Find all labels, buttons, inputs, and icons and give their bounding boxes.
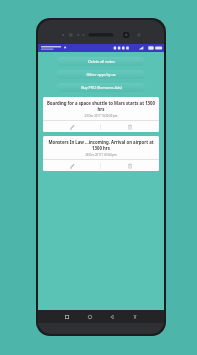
staticText: Buy PRO (Removes Ads) [81,85,122,90]
button[interactable]: Monsters In Law ...incoming. Arrival on … [43,136,159,171]
staticText: Delete all notes [88,59,115,64]
button[interactable]: Buy PRO (Removes Ads) [57,83,145,92]
button[interactable]: Other apps by us [57,70,145,79]
button[interactable]: Recent apps [62,312,72,322]
button[interactable]: Boarding for a space shuttle to Mars sta… [43,97,159,132]
staticText: 29 Dec 2017 10:30:00 pm [43,114,159,118]
button[interactable]: Edit note [43,121,100,132]
button[interactable]: Home [85,312,95,322]
button[interactable]: Edit note [43,160,100,171]
button[interactable]: Back [107,312,117,322]
staticText: Other apps by us [86,72,116,77]
staticText: Boarding for a space shuttle to Mars sta… [46,100,156,112]
button[interactable]: Delete note [101,121,159,132]
staticText: Monsters In Law ...incoming. Arrival on … [46,139,156,151]
button[interactable]: Delete all notes [57,57,145,66]
button[interactable]: Menu [130,312,140,322]
button[interactable]: Delete note [101,160,159,171]
staticText: 28 Dec 2017 1:03:04 pm [43,153,159,157]
